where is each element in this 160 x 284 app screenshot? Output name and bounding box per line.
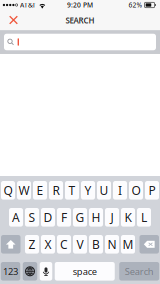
button[interactable]: F — [57, 208, 71, 227]
button[interactable]: N — [105, 235, 119, 254]
staticText: 62% — [128, 1, 142, 9]
staticText: O — [131, 182, 140, 198]
staticText: K — [124, 209, 131, 225]
staticText: Y — [84, 182, 91, 198]
button[interactable]: W — [17, 181, 31, 200]
staticText: T — [68, 182, 75, 198]
staticText: M — [122, 236, 133, 252]
staticText: R — [52, 182, 59, 198]
button[interactable]: C — [57, 235, 71, 254]
staticText: E — [36, 182, 43, 198]
staticText: D — [43, 209, 52, 225]
staticText: SEARCH — [65, 15, 94, 26]
button[interactable]: B — [89, 235, 103, 254]
button[interactable]: Close — [0, 9, 27, 30]
button[interactable]: M — [121, 235, 135, 254]
button[interactable]: Next keyboard — [23, 262, 37, 281]
staticText: L — [141, 209, 147, 225]
staticText: N — [107, 236, 116, 252]
button[interactable]: A — [9, 208, 23, 227]
button[interactable]: Z — [25, 235, 39, 254]
button[interactable]: J — [105, 208, 119, 227]
button[interactable]: space — [55, 262, 115, 281]
button[interactable]: S — [25, 208, 39, 227]
staticText: F — [61, 209, 67, 225]
button[interactable]: L — [137, 208, 151, 227]
staticText: Z — [28, 236, 35, 252]
button[interactable]: E — [33, 181, 47, 200]
staticText: AT&T — [20, 1, 36, 9]
staticText: J — [110, 209, 113, 225]
button[interactable]: H — [89, 208, 103, 227]
button[interactable]: T — [65, 181, 79, 200]
staticText: 123 — [3, 265, 18, 277]
button[interactable]: V — [73, 235, 87, 254]
button[interactable]: Y — [81, 181, 95, 200]
staticText: C — [60, 236, 68, 252]
button[interactable]: I — [113, 181, 127, 200]
button[interactable]: Search field — [0, 30, 160, 53]
button[interactable]: 123 — [1, 262, 20, 281]
staticText: Search — [125, 265, 154, 277]
staticText: H — [91, 209, 100, 225]
staticText: B — [92, 236, 100, 252]
button[interactable]: D — [41, 208, 55, 227]
button[interactable]: Shift — [1, 235, 20, 254]
staticText: S — [28, 209, 35, 225]
button[interactable]: Q — [1, 181, 15, 200]
button[interactable]: X — [41, 235, 55, 254]
staticText: G — [75, 209, 84, 225]
staticText: X — [44, 236, 51, 252]
staticText: V — [76, 236, 83, 252]
button[interactable]: G — [73, 208, 87, 227]
button[interactable]: R — [49, 181, 63, 200]
staticText: P — [148, 182, 155, 198]
button[interactable]: Delete — [139, 235, 159, 254]
button[interactable]: P — [145, 181, 159, 200]
staticText: I — [118, 182, 122, 198]
staticText: 9:20 PM — [67, 1, 93, 9]
button[interactable]: Search — [119, 262, 159, 281]
staticText: A — [12, 209, 20, 225]
button[interactable]: K — [121, 208, 135, 227]
button[interactable]: O — [129, 181, 143, 200]
button[interactable]: Dictation — [40, 262, 52, 281]
staticText: space — [73, 265, 97, 277]
staticText: U — [99, 182, 108, 198]
button[interactable]: U — [97, 181, 111, 200]
staticText: Q — [3, 182, 12, 198]
staticText: W — [18, 182, 29, 198]
